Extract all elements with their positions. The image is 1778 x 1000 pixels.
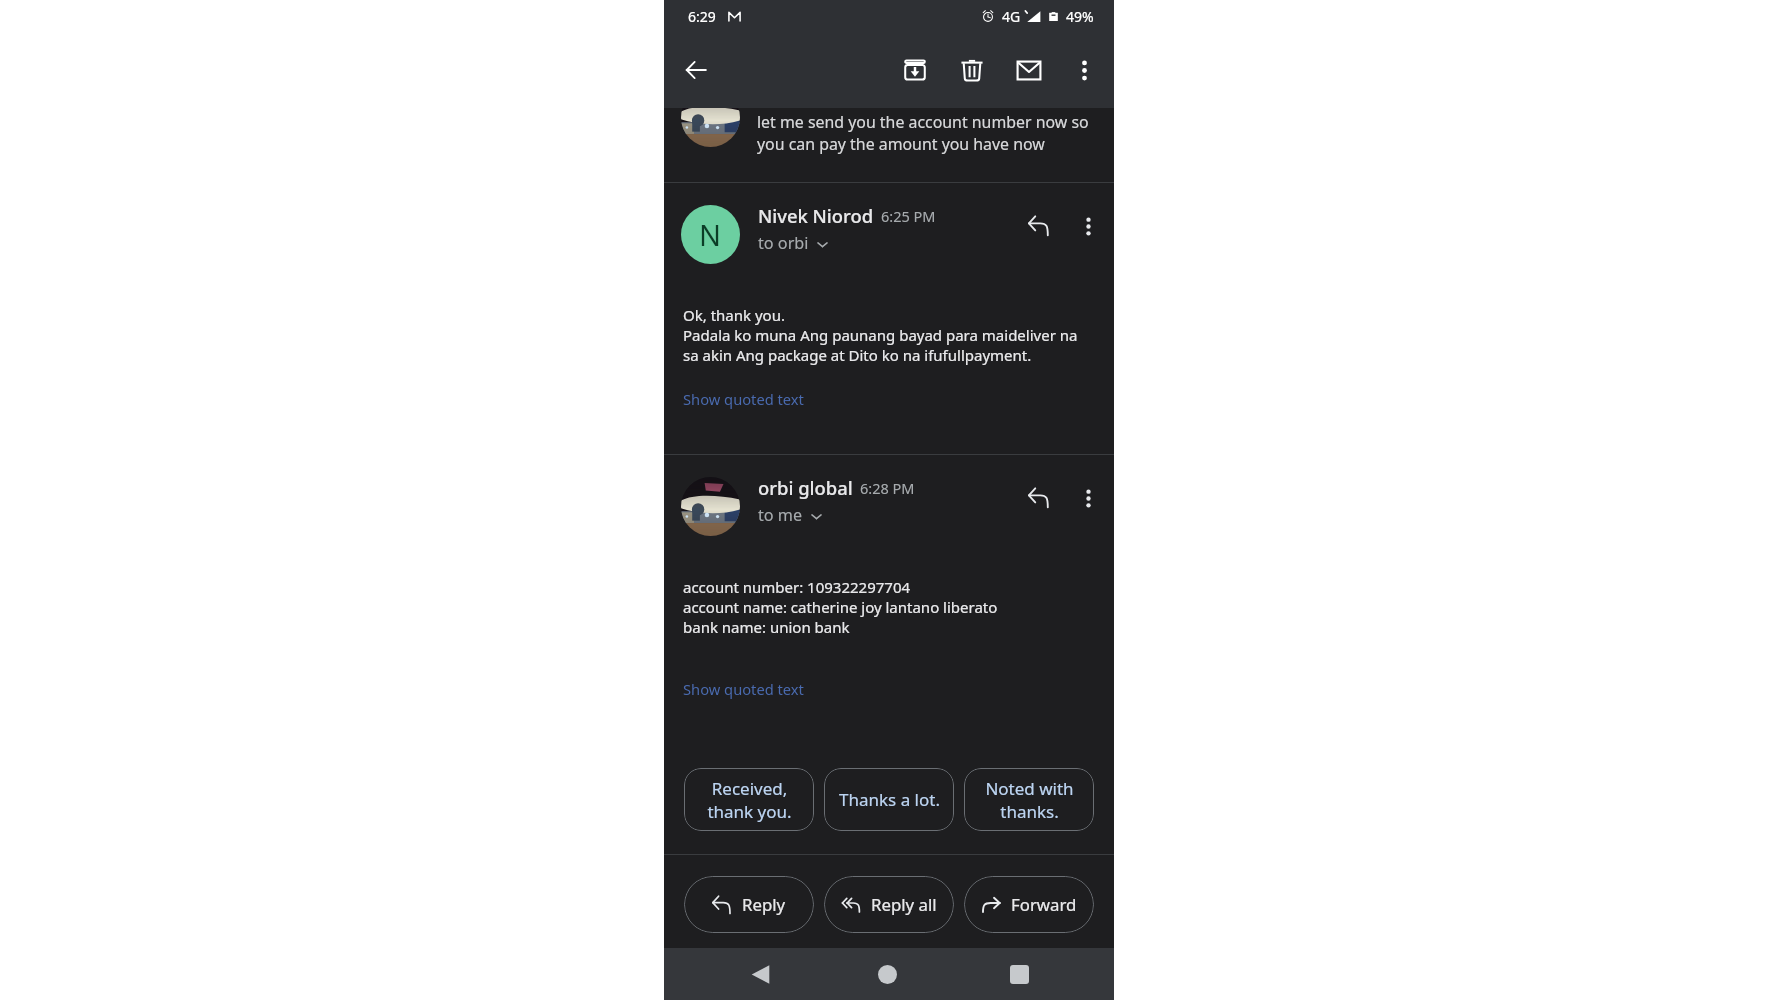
staticText: Forward	[1011, 893, 1077, 916]
button[interactable]: Reply	[1017, 476, 1061, 520]
staticText: Ok, thank you.	[683, 305, 785, 325]
staticText: Thanks a lot.	[839, 788, 940, 811]
staticText: account name: catherine joy lantano libe…	[683, 597, 998, 617]
button[interactable]: Back	[707, 948, 813, 1000]
staticText: you can pay the amount you have now	[757, 133, 1045, 155]
button[interactable]: More options	[1060, 46, 1108, 94]
button[interactable]: Forward	[964, 876, 1094, 933]
staticText: to orbi	[758, 232, 809, 254]
staticText: Nivek Niorod	[758, 203, 874, 228]
staticText: Reply all	[871, 893, 937, 916]
button[interactable]: Show quoted text	[683, 389, 804, 409]
staticText: Padala ko muna Ang paunang bayad para ma…	[683, 325, 1078, 345]
staticText: sa akin Ang package at Dito ko na ifuful…	[683, 345, 1032, 365]
button[interactable]: Archive	[891, 46, 939, 94]
button[interactable]: More options	[1066, 204, 1110, 248]
button[interactable]: Reply	[1017, 204, 1061, 248]
button[interactable]: Show quoted text	[683, 679, 804, 699]
staticText: 4G	[1002, 7, 1021, 26]
staticText: Noted with thanks.	[985, 777, 1074, 822]
button[interactable]: Delete	[948, 46, 996, 94]
button[interactable]: Thanks a lot.	[824, 768, 954, 831]
staticText: let me send you the account number now s…	[757, 111, 1089, 133]
button[interactable]: More options	[1066, 476, 1110, 520]
button[interactable]: Reply	[684, 876, 814, 933]
staticText: 6:29	[688, 7, 716, 26]
staticText: Reply	[742, 893, 786, 916]
staticText: 6:28 PM	[860, 478, 915, 498]
staticText: account number: 109322297704	[683, 577, 911, 597]
staticText: 6:25 PM	[881, 206, 936, 226]
staticText: orbi global	[758, 475, 853, 500]
staticText: bank name: union bank	[683, 617, 850, 637]
button[interactable]: Back	[672, 46, 720, 94]
button[interactable]: Received, thank you.	[684, 768, 814, 831]
button[interactable]: Noted with thanks.	[964, 768, 1094, 831]
button[interactable]: to orbi	[758, 232, 829, 254]
button[interactable]: Recents	[966, 948, 1072, 1000]
staticText: Show quoted text	[683, 679, 804, 699]
staticText: Show quoted text	[683, 389, 804, 409]
staticText: Received, thank you.	[707, 777, 792, 822]
staticText: to me	[758, 504, 803, 526]
button[interactable]: Home	[834, 948, 940, 1000]
button[interactable]: Mark unread	[1005, 46, 1053, 94]
staticText: N	[699, 215, 722, 254]
button[interactable]: Reply all	[824, 876, 954, 933]
button[interactable]: to me	[758, 504, 823, 526]
staticText: 49%	[1066, 7, 1094, 26]
